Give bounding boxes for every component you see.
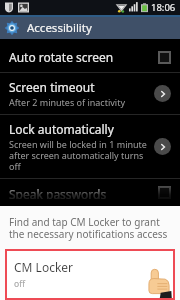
button[interactable]: Open Screen timeout — [154, 85, 171, 102]
staticText: CM Locker — [14, 259, 74, 275]
staticText: Screen timeout — [9, 79, 95, 95]
button[interactable]: CM Locker — [5, 249, 175, 300]
button[interactable]: Screen timeout — [0, 73, 180, 114]
staticText: Lock automatically — [9, 121, 114, 137]
staticText: Speak passwords — [9, 186, 107, 199]
staticText: Screen will be locked in 1 minute after … — [9, 138, 149, 172]
staticText: Find and tap CM Locker to grant the nece… — [9, 215, 171, 241]
button[interactable]: Speak passwords — [158, 186, 171, 199]
staticText: Auto rotate screen — [9, 49, 114, 65]
button[interactable]: Open Lock automatically — [154, 138, 171, 155]
button[interactable]: Lock automatically — [0, 115, 180, 178]
button[interactable]: Auto rotate screen — [158, 51, 171, 64]
button[interactable]: Auto rotate screen — [0, 42, 180, 72]
staticText: 18:06 — [151, 1, 176, 14]
button[interactable]: Speak passwords — [0, 179, 180, 206]
staticText: off — [14, 278, 25, 290]
staticText: Accessibility — [27, 20, 92, 36]
button[interactable]: Accessibility — [0, 17, 180, 39]
staticText: After 2 minutes of inactivity — [9, 96, 125, 108]
